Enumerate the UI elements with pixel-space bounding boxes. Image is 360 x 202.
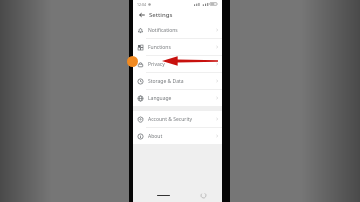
button[interactable]: Storage & Data [133,73,222,89]
button[interactable]: Language [133,90,222,106]
button[interactable]: Account & Security [133,111,222,127]
button[interactable]: Back [137,10,147,20]
staticText: Settings [149,11,173,19]
staticText: 12:04 [137,2,146,7]
staticText: Functions [148,44,171,51]
button[interactable]: About [133,128,222,144]
button[interactable]: Functions [133,39,222,55]
staticText: Account & Security [148,116,193,123]
staticText: Storage & Data [148,78,184,85]
button[interactable]: Recents [198,190,208,200]
button[interactable]: Home [155,190,171,200]
button[interactable]: Privacy [133,56,222,72]
staticText: Privacy [148,61,165,68]
button[interactable]: Notifications [133,22,222,38]
staticText: Language [148,95,172,102]
staticText: Notifications [148,27,178,34]
staticText: About [148,133,163,140]
